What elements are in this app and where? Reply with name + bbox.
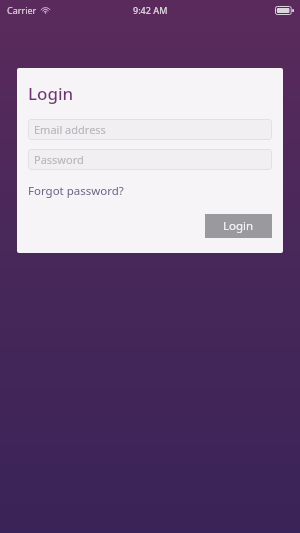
staticText: Password [34,152,84,167]
staticText: Forgot password? [28,183,124,199]
button[interactable]: Email address [28,119,272,140]
button[interactable]: Password [28,149,272,170]
staticText: Login [223,218,254,234]
staticText: Login [28,82,74,105]
staticText: Email address [34,122,106,137]
staticText: Carrier [7,4,37,16]
staticText: 9:42 AM [133,4,168,16]
button[interactable]: Forgot password? [28,182,124,200]
button[interactable]: Login [205,214,272,238]
